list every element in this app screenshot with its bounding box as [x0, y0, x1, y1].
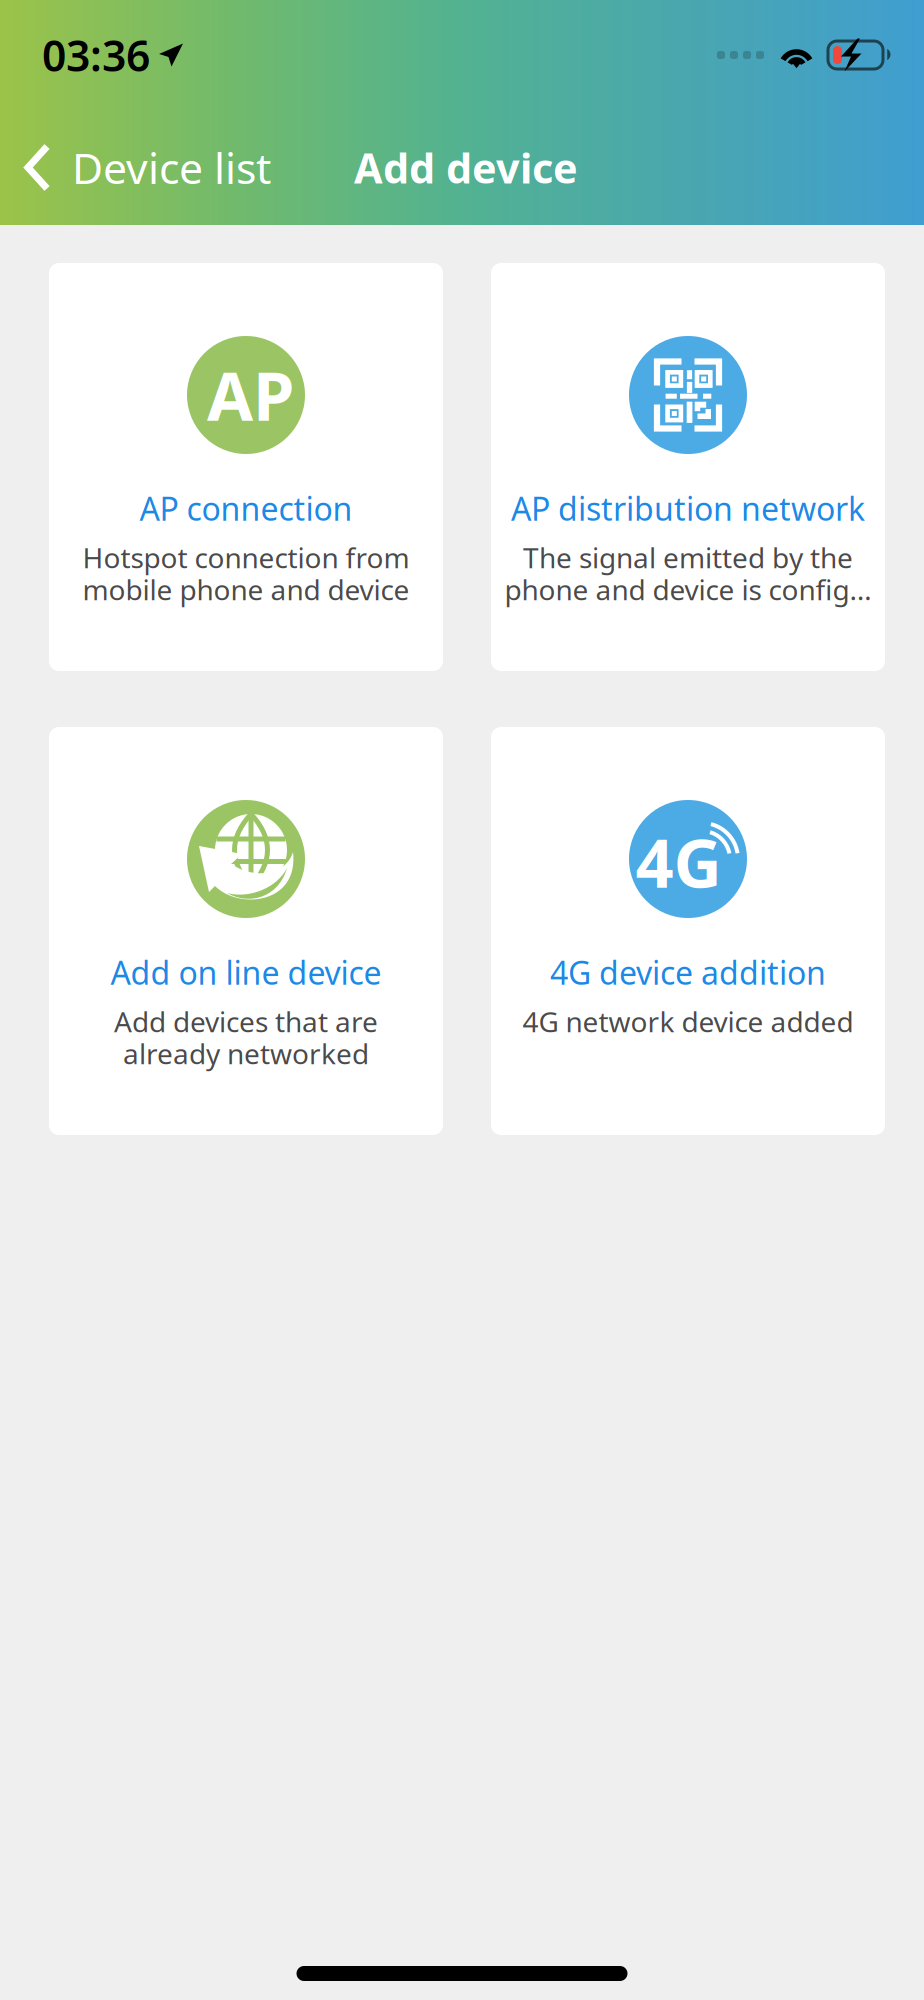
staticText: 03:36 [42, 27, 150, 83]
staticText: already networked [123, 1035, 369, 1072]
staticText: 4G [635, 818, 721, 906]
staticText: Hotspot connection from [82, 539, 409, 576]
button[interactable]: Add on line device [49, 727, 443, 1135]
button[interactable]: Back to Device list [0, 127, 287, 208]
staticText: The signal emitted by the [523, 539, 853, 576]
staticText: AP [207, 351, 294, 439]
staticText: AP connection [139, 487, 352, 529]
button[interactable]: 4G [491, 727, 885, 1135]
staticText: phone and device is config… [504, 571, 871, 608]
staticText: Add devices that are [114, 1003, 378, 1040]
button[interactable]: AP [49, 263, 443, 671]
button[interactable]: AP distribution network [491, 263, 885, 671]
staticText: Add on line device [110, 951, 381, 993]
staticText: Device list [72, 139, 271, 196]
staticText: AP distribution network [511, 487, 865, 529]
staticText: 4G network device added [522, 1003, 853, 1040]
staticText: mobile phone and device [82, 571, 409, 608]
staticText: Add device [354, 140, 578, 195]
staticText: 4G device addition [550, 951, 826, 993]
